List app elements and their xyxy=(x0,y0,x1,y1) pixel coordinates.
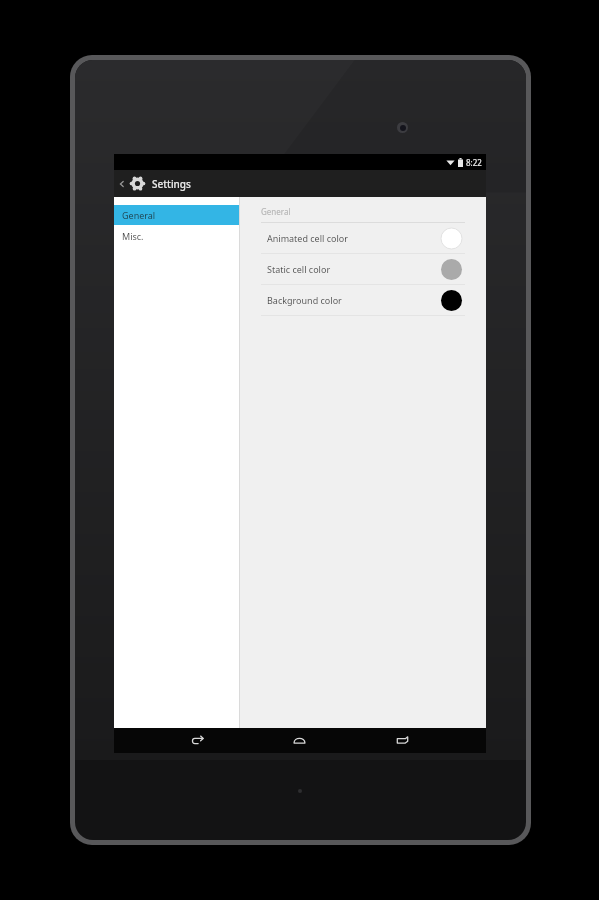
button[interactable]: Back xyxy=(178,728,216,753)
button[interactable]: Background color xyxy=(240,285,486,315)
button[interactable]: Home xyxy=(280,728,318,753)
button[interactable]: Recent apps xyxy=(383,728,421,753)
button[interactable]: Animated cell color xyxy=(240,223,486,253)
staticText: 8:22 xyxy=(466,157,482,168)
button[interactable]: Static cell color xyxy=(240,254,486,284)
staticText: General xyxy=(261,206,291,217)
button[interactable]: Misc. xyxy=(114,225,239,247)
staticText: General xyxy=(122,209,156,221)
button[interactable]: Navigate up xyxy=(114,170,486,197)
staticText: Animated cell color xyxy=(267,232,441,244)
staticText: Settings xyxy=(152,177,191,191)
other: Navigate up xyxy=(117,179,127,189)
staticText: Background color xyxy=(267,294,441,306)
staticText: Static cell color xyxy=(267,263,441,275)
button[interactable]: General xyxy=(114,205,239,225)
staticText: Misc. xyxy=(122,230,144,242)
